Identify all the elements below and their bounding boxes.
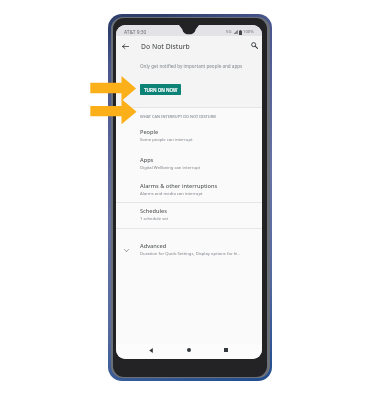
button[interactable]: Back bbox=[119, 40, 132, 53]
staticText: People bbox=[140, 128, 159, 136]
staticText: 100% bbox=[243, 29, 254, 35]
button[interactable]: Apps bbox=[116, 156, 262, 176]
button[interactable]: Search bbox=[248, 39, 261, 52]
staticText: Alarms and media can interrupt bbox=[140, 191, 203, 197]
staticText: WHAT CAN INTERRUPT DO NOT DISTURB bbox=[140, 114, 216, 119]
button[interactable]: Advanced bbox=[116, 241, 262, 257]
button[interactable]: TURN ON NOW bbox=[140, 84, 181, 95]
button[interactable]: Home bbox=[183, 344, 195, 356]
staticText: Alarms & other interruptions bbox=[140, 182, 218, 190]
button[interactable]: Alarms & other interruptions bbox=[116, 182, 262, 202]
staticText: Advanced bbox=[140, 242, 167, 250]
staticText: Only get notified by important people an… bbox=[140, 63, 243, 69]
staticText: 5G bbox=[226, 29, 232, 35]
button[interactable]: Schedules bbox=[116, 207, 262, 227]
staticText: Digital Wellbeing can interrupt bbox=[140, 165, 201, 171]
staticText: Apps bbox=[140, 156, 154, 164]
staticText: 1 schedule set bbox=[140, 216, 169, 222]
staticText: TURN ON NOW bbox=[144, 87, 178, 93]
staticText: AT&T 9:30 bbox=[124, 29, 147, 36]
button[interactable]: People bbox=[116, 128, 262, 148]
staticText: Schedules bbox=[140, 207, 167, 215]
staticText: Do Not Disturb bbox=[141, 42, 190, 51]
staticText: Some people can interrupt bbox=[140, 137, 193, 143]
button[interactable]: Recent apps bbox=[220, 344, 232, 356]
staticText: Duration for Quick Settings, Display opt… bbox=[140, 251, 240, 257]
button[interactable]: Back bbox=[145, 344, 157, 356]
